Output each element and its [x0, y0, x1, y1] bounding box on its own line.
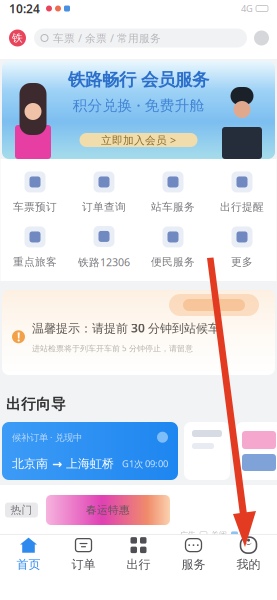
button[interactable]: 站车服务 [138, 169, 207, 216]
button[interactable]: 订单 [56, 531, 111, 577]
button[interactable]: 候补订单 · 兑现中 [2, 422, 178, 480]
button[interactable]: Home logo [8, 28, 27, 47]
button[interactable]: ! [0, 281, 277, 375]
staticText: 热门 [10, 503, 32, 517]
staticText: ! [17, 329, 20, 345]
staticText: 车票 / 余票 / 常用服务 [53, 31, 161, 45]
staticText: G1次 09:00 [122, 457, 168, 470]
staticText: 订单 [71, 557, 95, 572]
staticText: 服务 [181, 557, 205, 572]
staticText: 铁路12306 [78, 255, 130, 269]
button[interactable]: 我的 [221, 531, 276, 577]
staticText: 车票预订 [13, 200, 57, 213]
staticText: 进站检票将于列车开车前 5 分钟停止，请留意 [32, 343, 193, 353]
staticText: 铁 [12, 31, 23, 44]
staticText: 便民服务 [151, 255, 195, 268]
staticText: 首页 [16, 557, 40, 572]
button[interactable] [184, 422, 230, 480]
button[interactable]: 更多 [207, 224, 276, 271]
staticText: 广告 [180, 530, 196, 540]
staticText: 出行向导 [6, 395, 66, 413]
button[interactable]: 车票预订 [0, 169, 69, 216]
staticText: 候补订单 · 兑现中 [12, 431, 82, 443]
staticText: 温馨提示：请提前 30 分钟到站候车 [32, 320, 220, 336]
staticText: 重点旅客 [13, 255, 57, 268]
staticText: 我的 [236, 557, 260, 572]
staticText: 站车服务 [151, 200, 195, 213]
button[interactable]: 重点旅客 [0, 224, 69, 271]
button[interactable]: 首页 [1, 531, 56, 577]
button[interactable]: 铁路畅行 会员服务 [0, 59, 277, 159]
staticText: 铁路畅行 会员服务 [68, 69, 209, 90]
button[interactable]: 车票 / 余票 / 常用服务 [34, 28, 247, 47]
button[interactable]: 订单查询 [69, 169, 138, 216]
staticText: 出行 [126, 557, 150, 572]
button[interactable] [236, 422, 277, 480]
staticText: 北京南 → 上海虹桥 [12, 456, 114, 471]
button[interactable]: 服务 [166, 531, 221, 577]
staticText: 关闭 [211, 530, 227, 540]
staticText: 10:24 [9, 0, 40, 16]
button[interactable]: Account [254, 30, 269, 45]
button[interactable]: 便民服务 [138, 224, 207, 271]
staticText: 积分兑换 · 免费升舱 [72, 95, 204, 115]
staticText: 春运特惠 [86, 503, 130, 517]
staticText: 出行提醒 [220, 200, 264, 213]
button[interactable]: 铁路12306 [69, 224, 138, 271]
staticText: 订单查询 [82, 200, 126, 213]
staticText: 更多 [231, 255, 253, 268]
staticText: 4G [241, 2, 253, 15]
button[interactable]: 出行提醒 [207, 169, 276, 216]
staticText: 立即加入会员 > [101, 133, 176, 147]
button[interactable]: 出行 [111, 531, 166, 577]
